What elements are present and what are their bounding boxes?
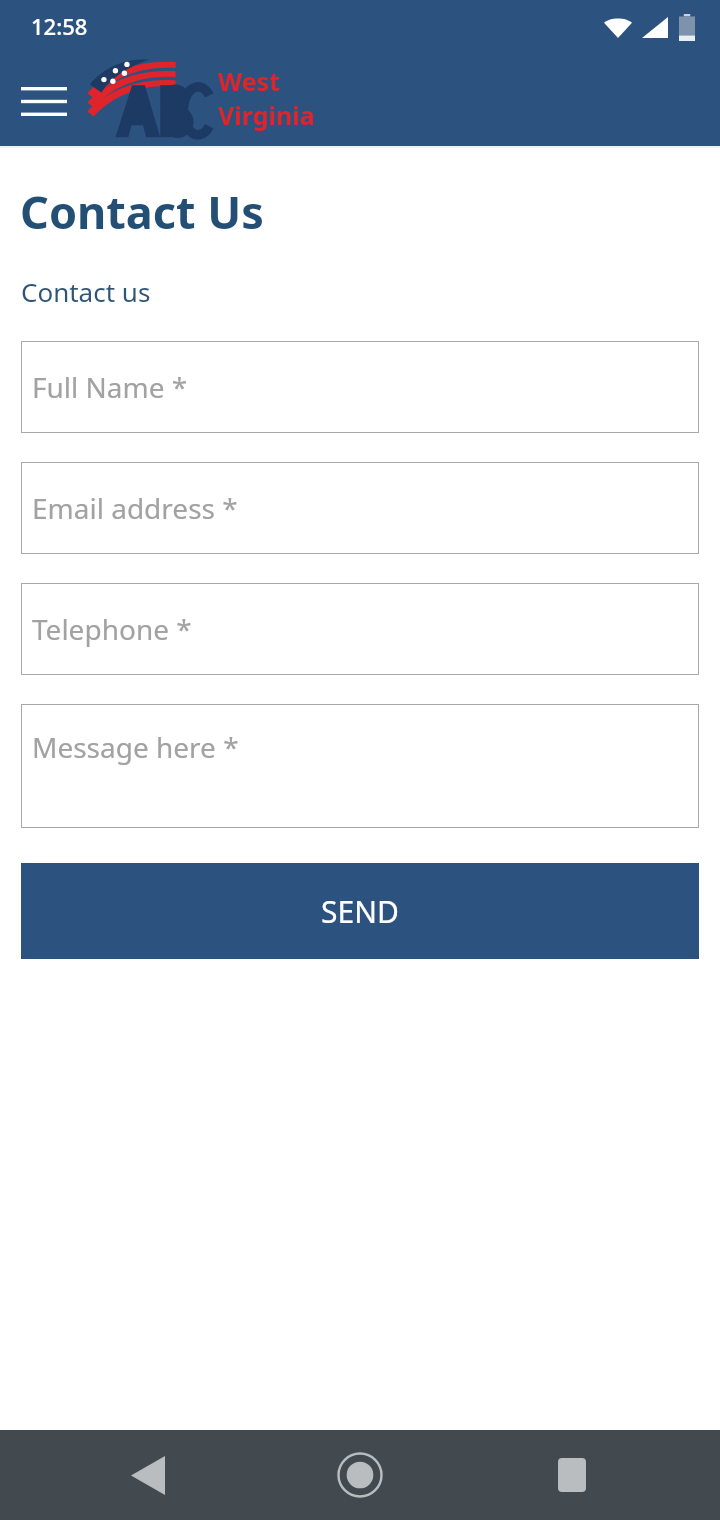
staticText: West [218,64,281,98]
button[interactable]: Recent apps [466,1430,678,1520]
staticText: SEND [321,891,399,932]
staticText: Full Name * [32,368,188,406]
staticText: Message here * [32,728,239,766]
staticText: 12:58 [31,11,88,41]
button[interactable]: Email address * [21,462,699,554]
button[interactable]: Open navigation menu [6,71,82,131]
button[interactable]: Message here * [21,704,699,828]
staticText: Virginia [218,98,315,132]
staticText: Contact Us [20,181,264,242]
staticText: Email address * [32,489,238,527]
button[interactable]: Telephone * [21,583,699,675]
button[interactable]: SEND [21,863,699,959]
button[interactable]: Full Name * [21,341,699,433]
button[interactable]: Home [254,1430,466,1520]
staticText: Telephone * [32,610,192,648]
staticText: Contact us [21,274,151,309]
button[interactable]: Back [42,1430,254,1520]
